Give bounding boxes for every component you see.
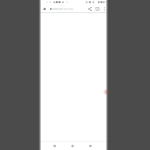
button[interactable]: Share xyxy=(91,5,97,12)
button[interactable]: Switch tabs xyxy=(97,5,103,12)
button[interactable]: Compose xyxy=(104,84,111,91)
button[interactable]: More options xyxy=(103,5,108,12)
button[interactable]: Back xyxy=(39,141,62,150)
button[interactable]: Recent apps xyxy=(85,141,108,150)
button[interactable]: Home xyxy=(62,141,85,150)
button[interactable]: Search or type web address xyxy=(39,5,91,12)
